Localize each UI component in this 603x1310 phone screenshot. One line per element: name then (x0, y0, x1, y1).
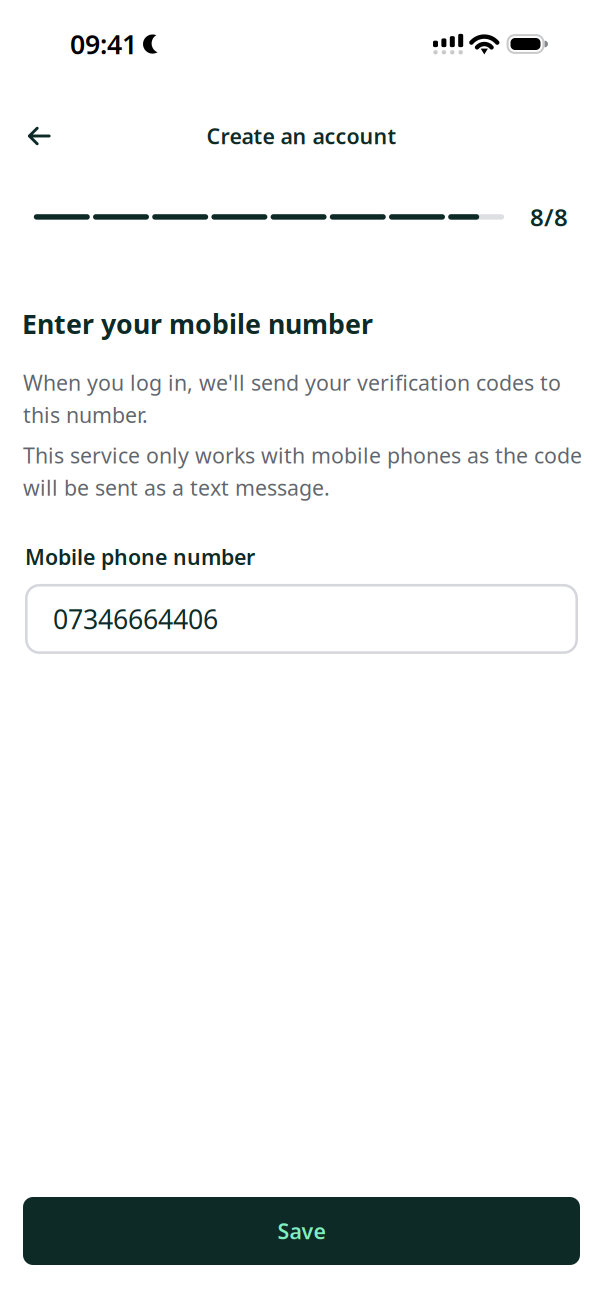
staticText: 8/8 (530, 201, 568, 233)
staticText: Mobile phone number (25, 543, 255, 571)
staticText: Save (277, 1217, 325, 1245)
button[interactable]: Back (16, 116, 62, 156)
button[interactable]: Save (23, 1197, 580, 1265)
staticText: This service only works with mobile phon… (23, 441, 582, 502)
staticText: When you log in, we'll send your verific… (23, 368, 561, 429)
staticText: Enter your mobile number (22, 306, 373, 341)
staticText: 07346664406 (53, 601, 218, 637)
staticText: Create an account (206, 122, 396, 150)
staticText: 09:41 (70, 26, 137, 62)
